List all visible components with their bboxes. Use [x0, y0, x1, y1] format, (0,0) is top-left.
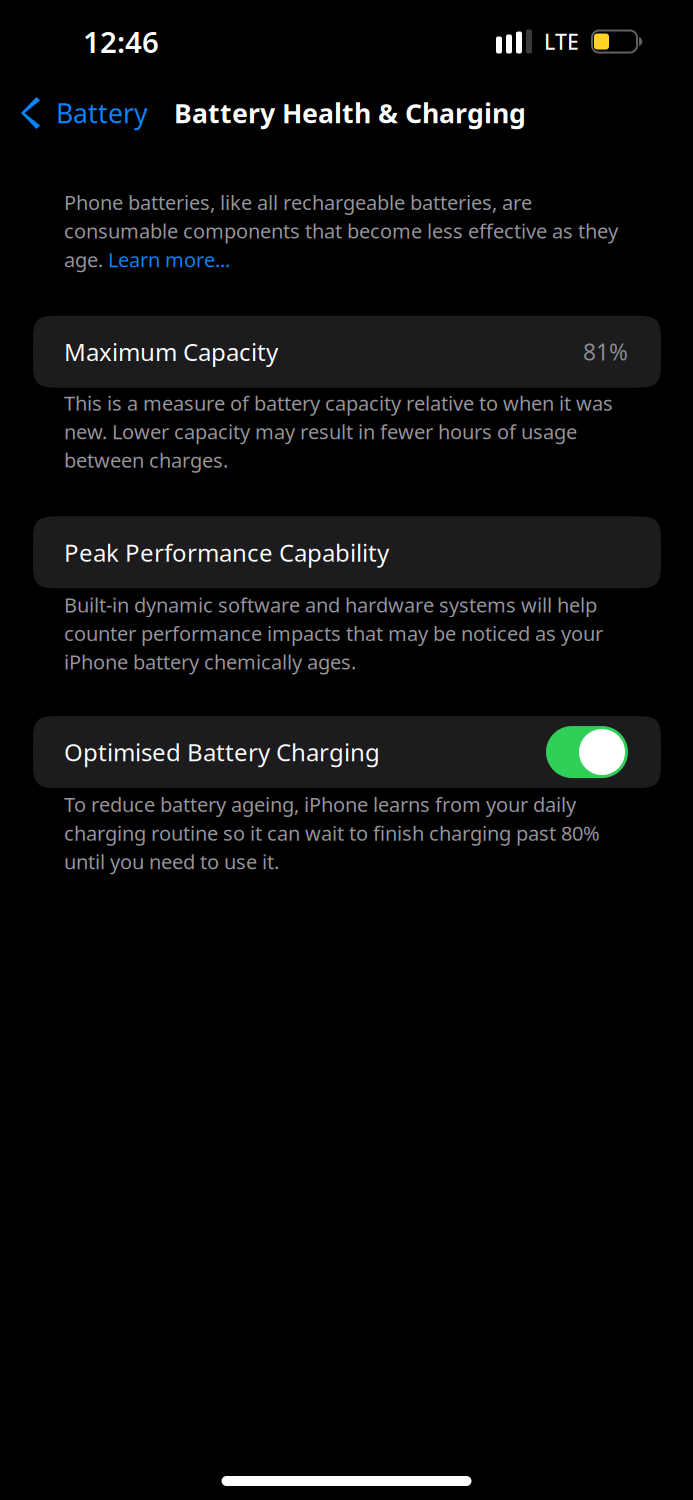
- staticText: This is a measure of battery capacity re…: [64, 390, 613, 473]
- staticText: Optimised Battery Charging: [64, 736, 380, 768]
- staticText: 81%: [583, 337, 628, 367]
- staticText: Maximum Capacity: [64, 336, 278, 368]
- staticText: To reduce battery ageing, iPhone learns …: [64, 791, 600, 875]
- staticText: Battery Health & Charging: [174, 95, 526, 131]
- button[interactable]: Maximum Capacity: [33, 316, 661, 388]
- button[interactable]: Optimised Battery Charging: [33, 716, 661, 788]
- button[interactable]: Peak Performance Capability: [33, 516, 661, 588]
- staticText: LTE: [544, 27, 579, 56]
- staticText: Phone batteries, like all rechargeable b…: [64, 189, 618, 273]
- staticText: 12:46: [83, 22, 159, 61]
- staticText: Built-in dynamic software and hardware s…: [64, 591, 603, 675]
- button[interactable]: Optimised Battery Charging: [546, 726, 628, 778]
- button[interactable]: Battery: [0, 83, 172, 143]
- staticText: Battery: [56, 95, 148, 131]
- staticText: Peak Performance Capability: [64, 536, 389, 568]
